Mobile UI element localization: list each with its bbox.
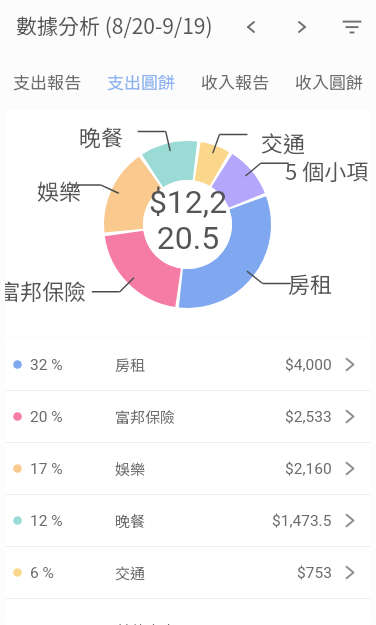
button[interactable]: 其他支出 [5, 620, 371, 625]
staticText: 收入報告 [201, 69, 269, 94]
button[interactable]: 收入報告 [188, 56, 282, 110]
staticText: 32 % [30, 356, 63, 374]
staticText: 晚餐 [115, 510, 146, 532]
staticText: 12 % [30, 512, 63, 530]
staticText: 富邦保險 [115, 406, 176, 428]
staticText: 娛樂 [37, 174, 82, 206]
staticText: 晚餐 [79, 120, 124, 152]
staticText: 富邦保險 [5, 274, 87, 306]
staticText: 房租 [115, 354, 146, 376]
button[interactable]: 支出圓餅 [94, 56, 188, 110]
staticText: $4,000 [285, 356, 332, 374]
button[interactable]: Next period [284, 9, 320, 45]
button[interactable]: 17 % [5, 443, 371, 494]
staticText: 其他支出 [116, 620, 177, 625]
staticText: 5 個小項 [285, 154, 369, 186]
staticText: 房租 [288, 267, 333, 299]
staticText: $2,533 [285, 408, 332, 426]
button[interactable]: 收入圓餅 [282, 56, 376, 110]
staticText: 數據分析 (8/20-9/19) [16, 10, 213, 40]
button[interactable]: 32 % [5, 339, 371, 390]
staticText: 17 % [30, 460, 63, 478]
staticText: 6 % [30, 564, 54, 582]
button[interactable]: 20 % [5, 391, 371, 442]
staticText: $2,160 [285, 460, 332, 478]
button[interactable]: 12 % [5, 495, 371, 546]
staticText: 收入圓餅 [295, 69, 363, 94]
button[interactable]: Filter [334, 9, 370, 45]
staticText: 交通 [115, 562, 146, 584]
staticText: 支出報告 [13, 69, 81, 94]
staticText: $12,220.5 [147, 183, 229, 256]
staticText: $1,473.5 [272, 512, 332, 530]
staticText: 20 % [30, 408, 63, 426]
button[interactable]: 支出報告 [0, 56, 94, 110]
button[interactable]: Previous period [233, 9, 269, 45]
staticText: 支出圓餅 [107, 69, 175, 94]
staticText: 交通 [261, 126, 306, 158]
button[interactable]: 6 % [5, 547, 371, 598]
staticText: 娛樂 [115, 458, 146, 480]
staticText: $753 [297, 564, 332, 582]
